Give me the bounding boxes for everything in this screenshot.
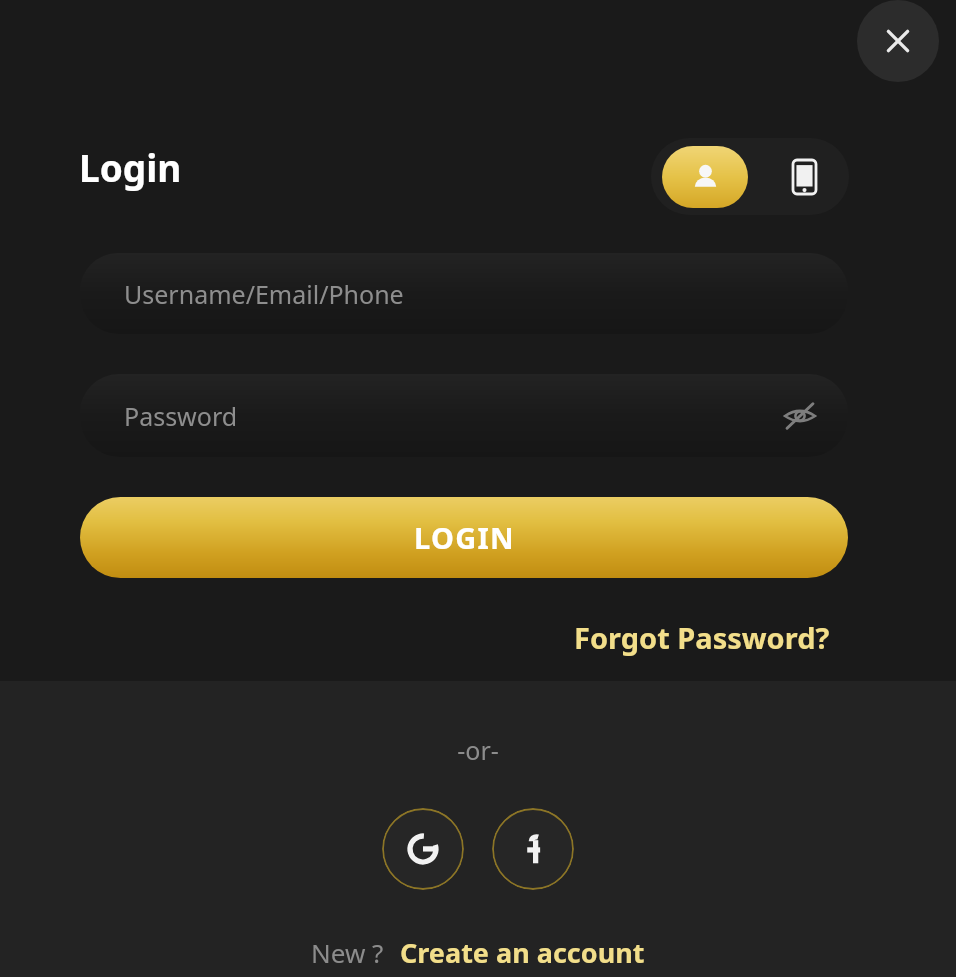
staticText: -or- — [457, 733, 499, 767]
staticText: Login — [79, 142, 182, 192]
staticText: Username/Email/Phone — [124, 277, 404, 311]
button[interactable]: Login with username — [662, 146, 748, 208]
button[interactable]: Sign in with Google — [382, 808, 464, 890]
staticText: LOGIN — [414, 518, 515, 557]
button[interactable]: Show password — [776, 392, 824, 440]
button[interactable]: Create an account — [400, 934, 645, 971]
button[interactable]: Password — [80, 374, 848, 457]
button[interactable]: Login with phone — [773, 146, 835, 208]
button[interactable]: Sign in with Facebook — [492, 808, 574, 890]
button[interactable]: Login with username — [651, 138, 849, 215]
button[interactable]: LOGIN — [80, 497, 848, 578]
staticText: Password — [124, 399, 238, 433]
button[interactable]: Forgot Password? — [562, 612, 842, 663]
staticText: Forgot Password? — [574, 618, 830, 657]
staticText: New ? — [311, 935, 384, 970]
staticText: Create an account — [400, 934, 645, 971]
button[interactable]: Username/Email/Phone — [80, 253, 848, 334]
button[interactable]: Close — [857, 0, 939, 82]
